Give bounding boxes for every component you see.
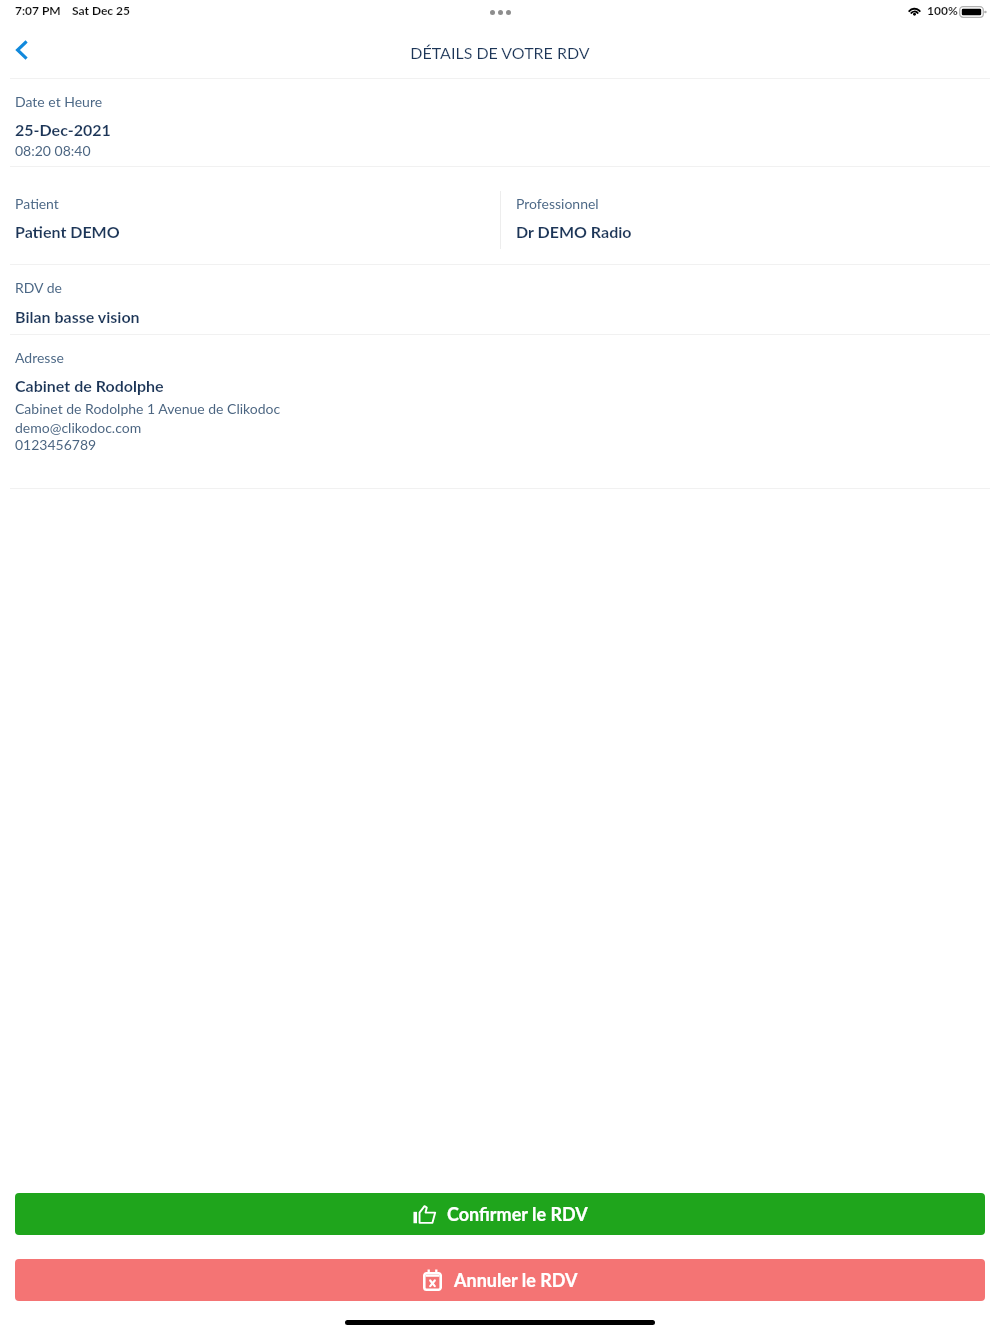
button[interactable]: Back [0,28,43,71]
button[interactable]: Annuler le RDV [15,1259,985,1301]
staticText: 0123456789 [15,436,97,453]
button[interactable]: Confirmer le RDV [15,1193,985,1235]
staticText: Cabinet de Rodolphe 1 Avenue de Clikodoc [15,400,281,417]
staticText: demo@clikodoc.com [15,419,142,436]
staticText: Patient DEMO [15,222,120,241]
staticText: 7:07 PM [15,3,61,17]
staticText: Bilan basse vision [15,307,140,326]
staticText: 08:20 08:40 [15,142,91,159]
staticText: RDV de [15,279,62,296]
staticText: Date et Heure [15,93,103,110]
staticText: Professionnel [516,195,599,212]
staticText: Adresse [15,349,64,366]
staticText: Sat Dec 25 [72,3,130,17]
staticText: Dr DEMO Radio [516,222,632,241]
staticText: Cabinet de Rodolphe [15,376,164,395]
staticText: Annuler le RDV [454,1269,578,1291]
staticText: Patient [15,195,59,212]
staticText: 100% [927,3,958,17]
staticText: 25-Dec-2021 [15,120,111,139]
staticText: DÉTAILS DE VOTRE RDV [410,43,590,62]
staticText: Confirmer le RDV [447,1203,588,1225]
